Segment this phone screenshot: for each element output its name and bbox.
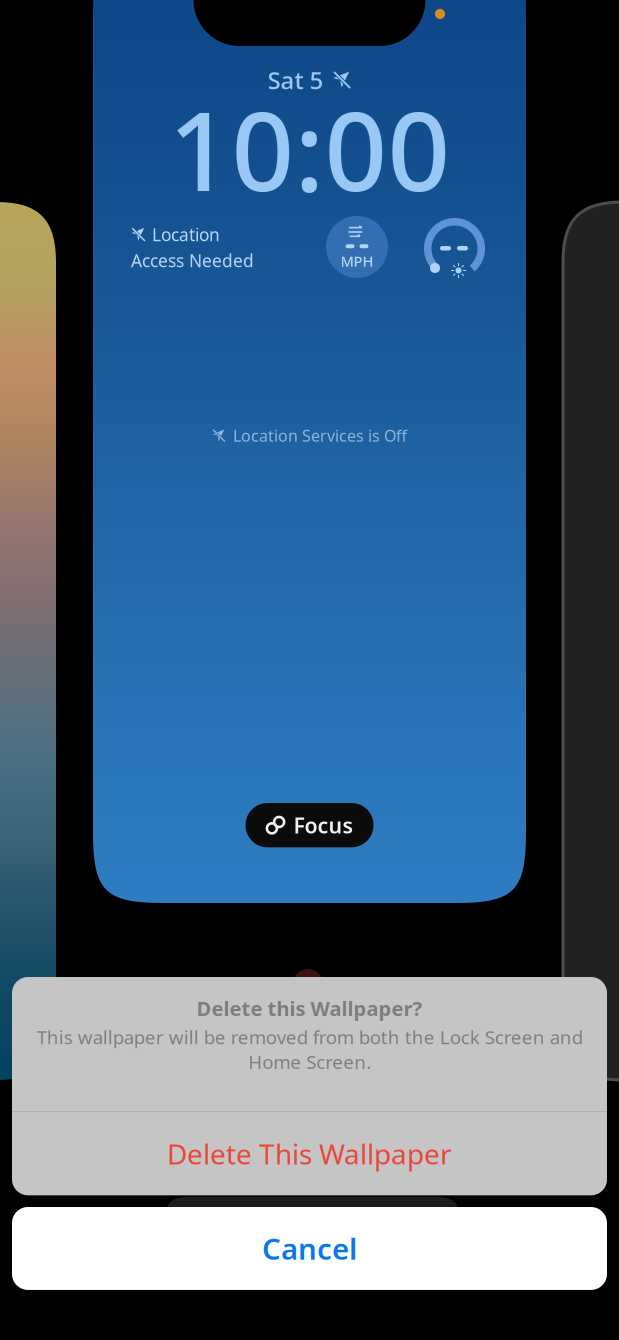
button[interactable]: Delete This Wallpaper <box>12 1112 607 1195</box>
staticText: Cancel <box>262 1229 357 1268</box>
button[interactable]: Cancel <box>12 1207 607 1290</box>
staticText: Location Services is Off <box>233 425 407 446</box>
staticText: This wallpaper will be removed from both… <box>36 1025 582 1074</box>
staticText: Access Needed <box>131 249 254 272</box>
staticText: MPH <box>340 251 373 271</box>
staticText: 10:00 <box>168 76 450 221</box>
staticText: Delete This Wallpaper <box>167 1135 452 1172</box>
staticText: Delete this Wallpaper? <box>196 995 422 1022</box>
staticText: Location <box>152 223 220 246</box>
staticText: Sat 5 <box>267 64 323 96</box>
staticText: Focus <box>293 811 353 839</box>
